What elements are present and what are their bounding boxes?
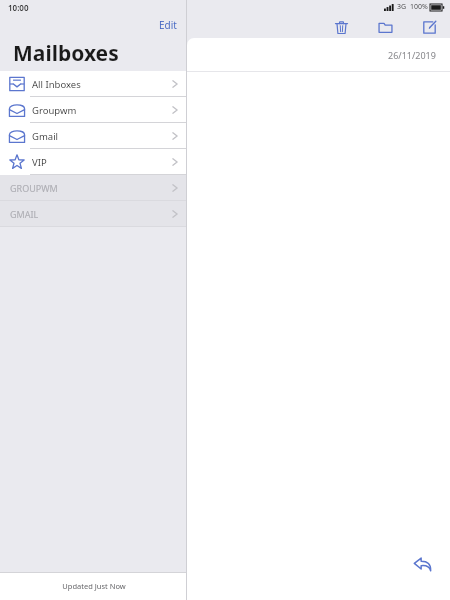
button[interactable]: Move to folder — [374, 16, 396, 38]
staticText: 3G — [397, 2, 407, 12]
staticText: Edit — [159, 18, 177, 32]
button[interactable]: VIP — [0, 149, 187, 175]
button[interactable]: GMAIL — [0, 201, 187, 227]
staticText: 100% — [410, 2, 428, 12]
staticText: VIP — [32, 156, 47, 169]
button[interactable]: Compose — [418, 16, 440, 38]
button[interactable]: Delete — [330, 16, 352, 38]
staticText: Groupwm — [32, 104, 77, 117]
button[interactable]: Edit — [149, 15, 187, 35]
staticText: All Inboxes — [32, 78, 81, 91]
staticText: Gmail — [32, 130, 59, 143]
button[interactable]: Groupwm — [0, 97, 187, 123]
staticText: Updated Just Now — [62, 581, 126, 591]
staticText: 26/11/2019 — [388, 49, 436, 61]
staticText: Mailboxes — [13, 39, 119, 68]
staticText: GMAIL — [10, 208, 39, 220]
button[interactable]: Gmail — [0, 123, 187, 149]
staticText: GROUPWM — [10, 182, 58, 194]
staticText: 10:00 — [8, 2, 29, 13]
button[interactable]: Reply — [410, 552, 434, 576]
button[interactable]: GROUPWM — [0, 175, 187, 201]
button[interactable]: All Inboxes — [0, 71, 187, 97]
